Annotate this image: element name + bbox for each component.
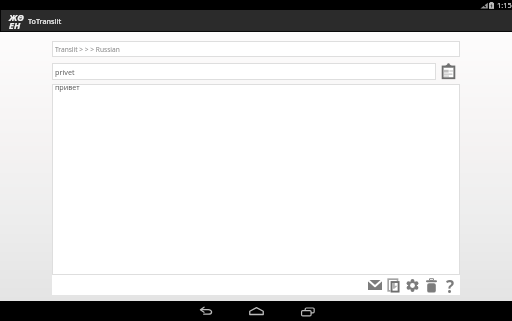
- staticText: privet: [55, 67, 75, 77]
- staticText: 1:15: [497, 0, 512, 10]
- button[interactable]: Home: [231, 301, 282, 321]
- staticText: привет: [55, 82, 80, 92]
- button[interactable]: Send email: [365, 275, 384, 295]
- button[interactable]: Help: [441, 275, 460, 295]
- button[interactable]: Settings: [403, 275, 422, 295]
- button[interactable]: Copy: [384, 275, 403, 295]
- button[interactable]: Paste from clipboard: [438, 63, 458, 80]
- button[interactable]: Back: [180, 301, 231, 321]
- staticText: EH: [9, 19, 21, 31]
- staticText: ЖΘ: [9, 11, 24, 23]
- button[interactable]: Recent apps: [282, 301, 333, 321]
- staticText: ?: [446, 275, 455, 295]
- staticText: ToTranslit: [28, 16, 62, 26]
- button[interactable]: Delete: [422, 275, 441, 295]
- staticText: Translit > > > Russian: [55, 45, 120, 54]
- button[interactable]: privet: [52, 63, 436, 80]
- button[interactable]: Translit > > > Russian: [52, 41, 460, 57]
